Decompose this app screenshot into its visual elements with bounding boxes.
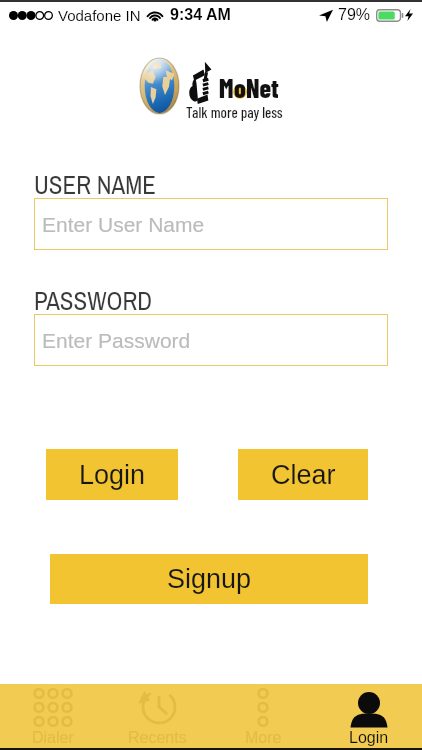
staticText: Talk more pay less bbox=[186, 103, 283, 121]
staticText: Clear bbox=[271, 460, 336, 490]
staticText: Enter User Name bbox=[42, 213, 205, 236]
staticText: PASSWORD bbox=[34, 284, 153, 318]
button[interactable]: Signup bbox=[50, 554, 368, 604]
other: Dialer bbox=[31, 684, 75, 728]
staticText: Enter Password bbox=[42, 329, 191, 352]
button[interactable]: Recents bbox=[105, 684, 210, 748]
button[interactable]: Login bbox=[316, 684, 422, 748]
button[interactable]: Clear bbox=[238, 449, 368, 500]
button[interactable]: More bbox=[210, 684, 316, 748]
staticText: Login bbox=[349, 729, 389, 747]
staticText: Dialer bbox=[32, 729, 74, 747]
staticText: Vodafone IN bbox=[58, 7, 141, 24]
staticText: M bbox=[219, 72, 234, 103]
staticText: 79% bbox=[338, 6, 371, 24]
button[interactable]: Enter Password bbox=[34, 314, 388, 366]
staticText: Recents bbox=[128, 729, 187, 747]
button[interactable]: Dialer bbox=[0, 684, 105, 748]
staticText: Login bbox=[79, 460, 146, 490]
button[interactable]: Login bbox=[46, 449, 178, 500]
staticText: 9:34 AM bbox=[170, 6, 231, 24]
staticText: Net bbox=[246, 72, 279, 103]
staticText: Signup bbox=[167, 564, 252, 594]
staticText: USER NAME bbox=[34, 168, 156, 202]
other: Login bbox=[347, 684, 391, 728]
button[interactable]: Enter User Name bbox=[34, 198, 388, 250]
staticText: More bbox=[245, 729, 282, 747]
other: Recents bbox=[136, 684, 180, 728]
other: More bbox=[241, 684, 285, 728]
staticText: o bbox=[234, 72, 246, 103]
